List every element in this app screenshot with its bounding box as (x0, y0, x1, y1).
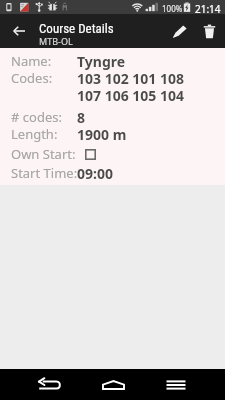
button[interactable]: Back (26, 369, 73, 400)
button[interactable]: Navigate up (0, 14, 37, 48)
staticText: 1900 m (77, 125, 127, 144)
staticText: 103 102 101 108 (77, 69, 185, 88)
staticText: 21:14 (195, 2, 221, 16)
staticText: Tyngre (77, 52, 126, 71)
staticText: # codes: (11, 108, 62, 126)
staticText: 8 (77, 108, 86, 127)
staticText: Name: (11, 52, 52, 70)
staticText: Own Start: (11, 145, 76, 163)
button[interactable]: Home (89, 369, 137, 400)
button[interactable]: Delete (194, 14, 225, 48)
staticText: Start Time: (11, 164, 78, 182)
staticText: MTB-OL (39, 35, 73, 47)
staticText: Length: (11, 125, 58, 143)
staticText: 09:00 (77, 164, 113, 183)
staticText: Codes: (11, 69, 53, 87)
staticText: 107 106 105 104 (77, 86, 185, 105)
staticText: Course Details (39, 21, 114, 36)
staticText: 100% (162, 3, 183, 14)
button[interactable]: Edit (162, 14, 196, 48)
button[interactable]: Recent apps (152, 369, 200, 400)
button[interactable]: Own Start checkbox (85, 149, 96, 160)
